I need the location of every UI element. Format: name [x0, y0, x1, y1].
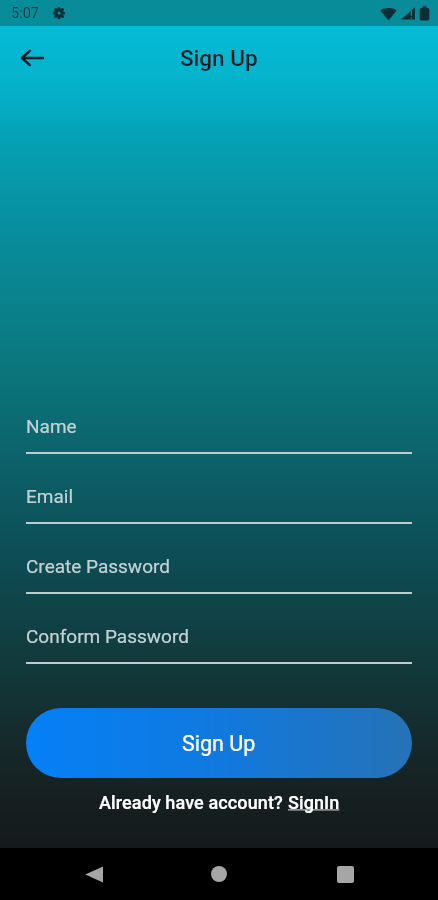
button[interactable]: Conform Password: [26, 625, 412, 664]
button[interactable]: Name: [26, 415, 412, 454]
staticText: Sign Up: [180, 45, 258, 71]
button[interactable]: SignIn: [288, 792, 340, 813]
button[interactable]: Create Password: [26, 555, 412, 594]
staticText: Create Password: [26, 555, 170, 577]
staticText: Name: [26, 415, 77, 437]
button[interactable]: Email: [26, 485, 412, 524]
staticText: Sign Up: [182, 731, 256, 756]
staticText: Email: [26, 485, 74, 507]
button[interactable]: Sign Up: [26, 708, 412, 778]
staticText: 5:07: [11, 5, 39, 22]
staticText: SignIn: [288, 792, 340, 813]
staticText: Conform Password: [26, 625, 189, 647]
button[interactable]: Recents: [319, 848, 371, 900]
button[interactable]: Back: [67, 848, 119, 900]
button[interactable]: Back: [10, 36, 54, 80]
button[interactable]: Home: [193, 848, 245, 900]
staticText: Already have account?: [99, 792, 288, 813]
